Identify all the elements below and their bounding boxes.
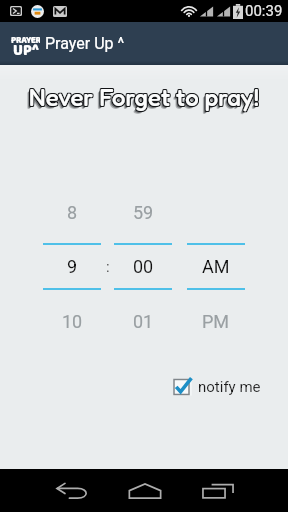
staticText: 59 xyxy=(133,202,154,223)
staticText: Never Forget to pray! xyxy=(28,84,259,113)
button[interactable]: 59 xyxy=(114,181,172,243)
staticText: PM xyxy=(202,311,230,332)
button[interactable]: 8 xyxy=(43,181,101,243)
staticText: Never Forget to pray! xyxy=(29,84,260,113)
staticText: 01 xyxy=(133,311,154,332)
staticText: Never Forget to pray! xyxy=(26,86,257,115)
staticText: Never Forget to pray! xyxy=(29,82,260,111)
staticText: UP^ xyxy=(13,39,39,63)
button[interactable]: notify me xyxy=(171,374,263,399)
button[interactable]: Home xyxy=(108,469,181,512)
button[interactable]: Back xyxy=(35,469,108,512)
button[interactable]: Recent apps xyxy=(181,469,254,512)
button[interactable]: 9 xyxy=(43,245,101,288)
staticText: Never Forget to pray! xyxy=(30,82,261,111)
button[interactable]: 00 xyxy=(114,245,172,288)
staticText: 10 xyxy=(62,311,83,332)
staticText: notify me xyxy=(198,378,261,396)
button[interactable]: PM xyxy=(187,290,245,352)
staticText: AM xyxy=(202,256,230,277)
staticText: Never Forget to pray! xyxy=(28,84,259,113)
staticText: Never Forget to pray! xyxy=(30,84,261,113)
staticText: Never Forget to pray! xyxy=(28,82,259,111)
staticText: Never Forget to pray! xyxy=(28,83,259,112)
staticText: 8 xyxy=(67,202,78,223)
staticText: : xyxy=(106,258,110,276)
button[interactable]: AM xyxy=(187,245,245,288)
staticText: Never Forget to pray! xyxy=(29,83,260,112)
staticText: 00:39 xyxy=(245,2,283,20)
staticText: Prayer Up ^ xyxy=(45,34,125,53)
staticText: Never Forget to pray! xyxy=(30,83,261,112)
staticText: PRAYER xyxy=(11,33,40,47)
button[interactable]: 01 xyxy=(114,290,172,352)
button[interactable]: 10 xyxy=(43,290,101,352)
staticText: 9 xyxy=(67,256,78,277)
staticText: Never Forget to pray! xyxy=(27,85,258,114)
staticText: 00 xyxy=(133,256,154,277)
